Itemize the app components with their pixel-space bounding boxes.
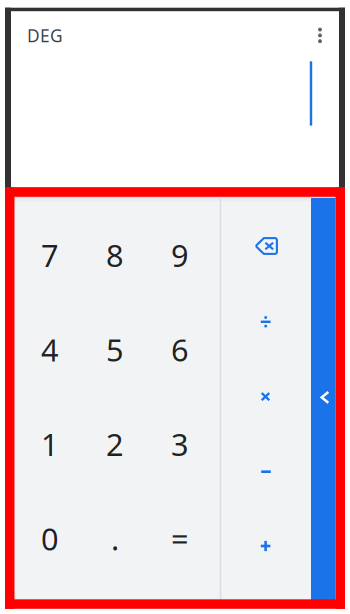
button[interactable]: 7	[16, 205, 84, 305]
button[interactable]: Add	[231, 509, 301, 583]
button[interactable]: 9	[146, 205, 214, 305]
staticText: 7	[41, 235, 59, 275]
button[interactable]: 6	[146, 299, 214, 400]
button[interactable]: 2	[81, 394, 149, 494]
button[interactable]: 5	[81, 299, 149, 400]
button[interactable]: Delete	[231, 206, 301, 286]
staticText: 2	[106, 424, 124, 464]
staticText: .	[111, 518, 119, 559]
staticText: 6	[171, 329, 189, 370]
button[interactable]: More options	[304, 18, 336, 52]
button[interactable]: Subtract	[231, 435, 301, 509]
button[interactable]: Back	[313, 196, 337, 598]
button[interactable]: =	[146, 488, 214, 589]
staticText: 8	[106, 235, 124, 275]
staticText: 1	[41, 424, 59, 464]
staticText: 3	[171, 424, 189, 464]
staticText: DEG	[27, 24, 63, 47]
staticText: 4	[41, 329, 59, 370]
button[interactable]: 0	[16, 488, 84, 589]
button[interactable]: Multiply	[230, 360, 300, 434]
button[interactable]: 3	[146, 394, 214, 494]
button[interactable]: .	[81, 488, 149, 589]
staticText: =	[171, 518, 189, 559]
button[interactable]: 4	[16, 299, 84, 400]
button[interactable]: Divide	[231, 285, 301, 359]
staticText: 0	[41, 518, 59, 559]
button[interactable]: 1	[16, 394, 84, 494]
staticText: 5	[106, 329, 124, 370]
button[interactable]: 8	[81, 205, 149, 305]
staticText: 9	[171, 235, 189, 275]
